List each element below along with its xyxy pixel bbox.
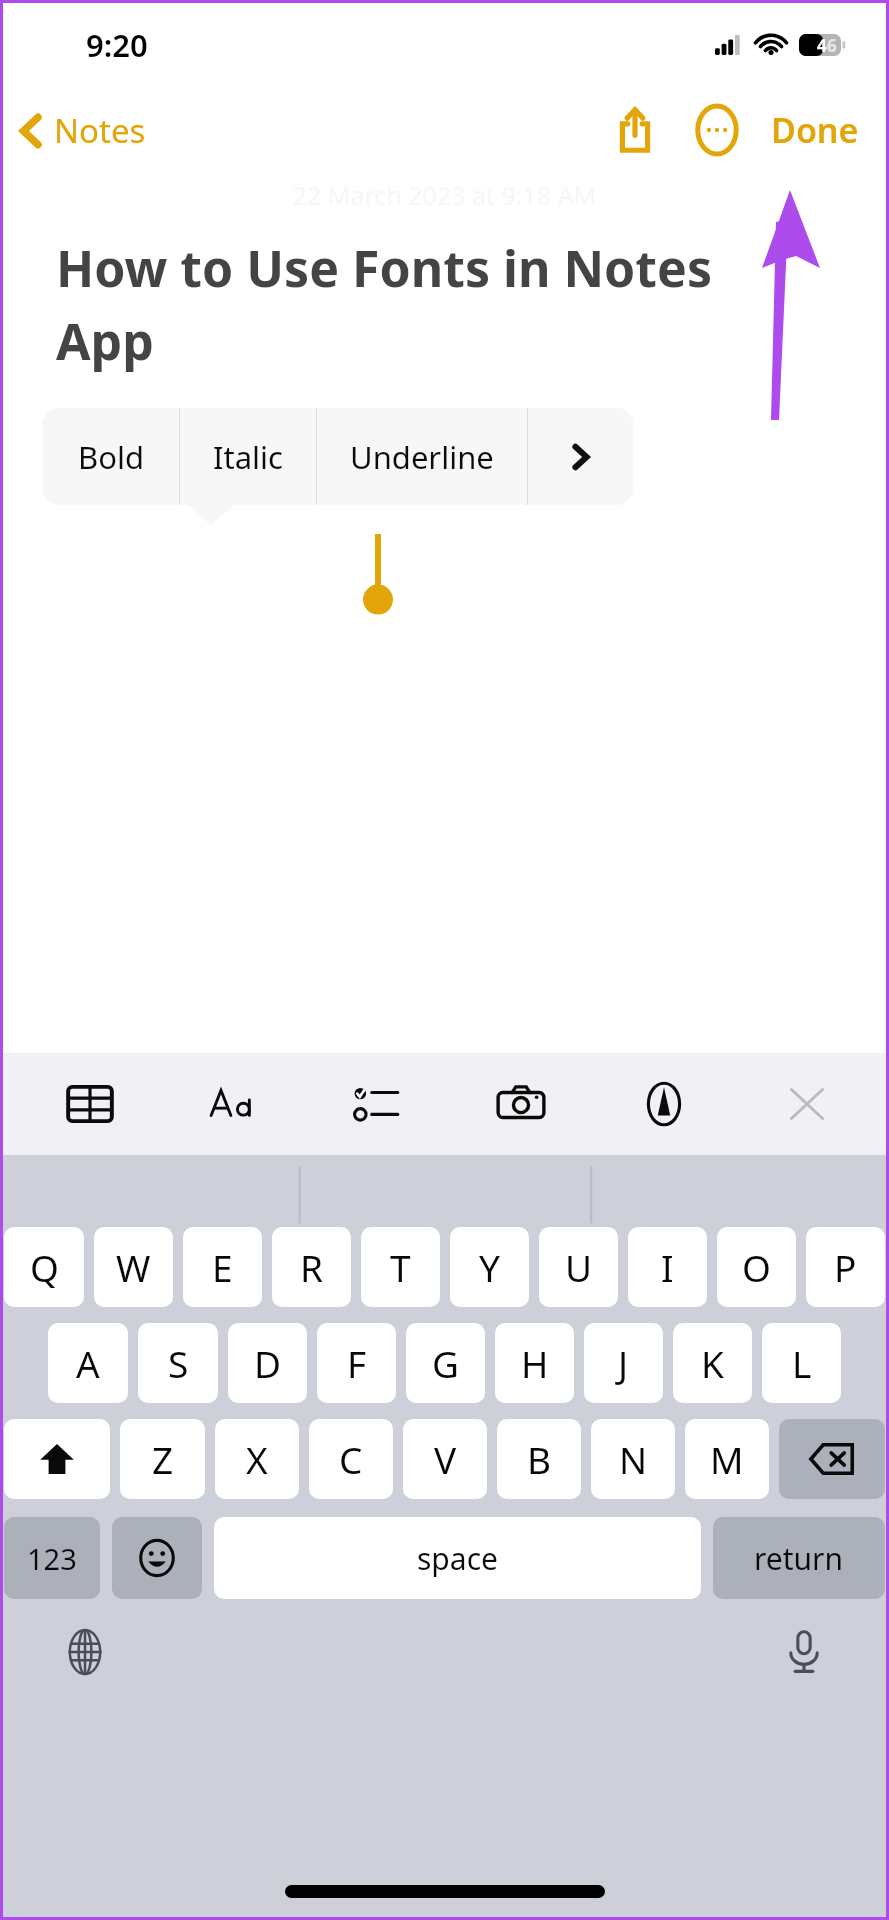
button[interactable]: Insert table [52, 1066, 128, 1142]
button[interactable]: More options [685, 98, 749, 162]
button[interactable]: Close [769, 1066, 845, 1142]
staticText: 6 [827, 34, 837, 57]
staticText: 4 [817, 34, 827, 57]
button[interactable]: B [497, 1419, 581, 1499]
staticText: E [212, 1242, 233, 1292]
staticText: B [527, 1434, 552, 1484]
button[interactable]: Underline [317, 408, 527, 505]
staticText: Y [479, 1242, 500, 1292]
button[interactable]: Camera [483, 1066, 559, 1142]
staticText: G [432, 1338, 459, 1388]
staticText: Notes [54, 108, 146, 153]
staticText: L [792, 1338, 812, 1388]
button[interactable]: Italic [180, 408, 316, 505]
staticText: Z [152, 1434, 174, 1484]
button[interactable]: L [762, 1323, 841, 1403]
staticText: space [417, 1538, 498, 1579]
staticText: K [701, 1338, 724, 1388]
button[interactable]: Text format [196, 1066, 272, 1142]
staticText: This is an example [60, 442, 353, 488]
staticText: S [168, 1338, 189, 1388]
button[interactable]: A [48, 1323, 128, 1403]
staticText: N [619, 1434, 648, 1484]
button[interactable]: M [685, 1419, 769, 1499]
button[interactable]: Backspace [779, 1419, 885, 1499]
button[interactable]: X [215, 1419, 299, 1499]
button[interactable]: W [94, 1227, 173, 1307]
button[interactable]: Change keyboard [52, 1619, 118, 1685]
button[interactable]: Y [450, 1227, 529, 1307]
staticText: How to Use Fonts in Notes App [56, 234, 799, 374]
button[interactable]: return [713, 1517, 885, 1599]
button[interactable]: R [272, 1227, 351, 1307]
staticText: A [76, 1338, 100, 1388]
button[interactable]: P [806, 1227, 885, 1307]
staticText: Q [30, 1242, 59, 1292]
staticText: H [521, 1338, 549, 1388]
staticText: X [246, 1434, 268, 1484]
button[interactable]: 123 [4, 1517, 100, 1599]
staticText: Italic [213, 436, 283, 478]
staticText: return [754, 1538, 844, 1579]
button[interactable]: Done [763, 97, 867, 163]
button[interactable]: K [673, 1323, 752, 1403]
button[interactable]: G [406, 1323, 485, 1403]
button[interactable]: Bold [43, 408, 179, 505]
staticText: T [390, 1242, 411, 1292]
staticText: F [347, 1338, 367, 1388]
staticText: M [710, 1434, 744, 1484]
button[interactable]: I [628, 1227, 707, 1307]
button[interactable]: E [183, 1227, 262, 1307]
button[interactable]: Checklist [340, 1066, 416, 1142]
button[interactable]: Notes [0, 100, 158, 161]
button[interactable]: F [317, 1323, 396, 1403]
staticText: P [834, 1242, 857, 1292]
staticText: O [742, 1242, 771, 1292]
staticText: Underline [350, 436, 494, 478]
staticText: J [618, 1338, 629, 1388]
staticText: U [565, 1242, 593, 1292]
staticText: R [300, 1242, 324, 1292]
button[interactable]: O [717, 1227, 796, 1307]
staticText: 9:20 [86, 24, 148, 66]
staticText: W [116, 1242, 151, 1292]
staticText: V [434, 1434, 457, 1484]
staticText: 22 March 2023 at 9:18 AM [0, 178, 889, 212]
staticText: Bold [78, 436, 144, 478]
button[interactable]: Share [603, 98, 667, 162]
button[interactable]: space [214, 1517, 701, 1599]
button[interactable]: S [138, 1323, 218, 1403]
button[interactable]: Dictate [771, 1619, 837, 1685]
button[interactable]: Markup [626, 1066, 702, 1142]
button[interactable]: Q [4, 1227, 84, 1307]
button[interactable]: N [591, 1419, 675, 1499]
button[interactable]: T [361, 1227, 440, 1307]
staticText: D [254, 1338, 282, 1388]
button[interactable]: More formatting [528, 408, 633, 505]
button[interactable]: H [495, 1323, 574, 1403]
button[interactable]: Emoji [112, 1517, 202, 1599]
button[interactable]: V [403, 1419, 487, 1499]
button[interactable]: Z [120, 1419, 205, 1499]
button[interactable]: Shift [4, 1419, 110, 1499]
staticText: 123 [27, 1539, 77, 1578]
button[interactable]: U [539, 1227, 618, 1307]
button[interactable]: J [584, 1323, 663, 1403]
button[interactable]: D [228, 1323, 307, 1403]
staticText: C [339, 1434, 363, 1484]
staticText: I [661, 1242, 674, 1292]
button[interactable]: C [309, 1419, 393, 1499]
staticText: Done [771, 107, 859, 153]
